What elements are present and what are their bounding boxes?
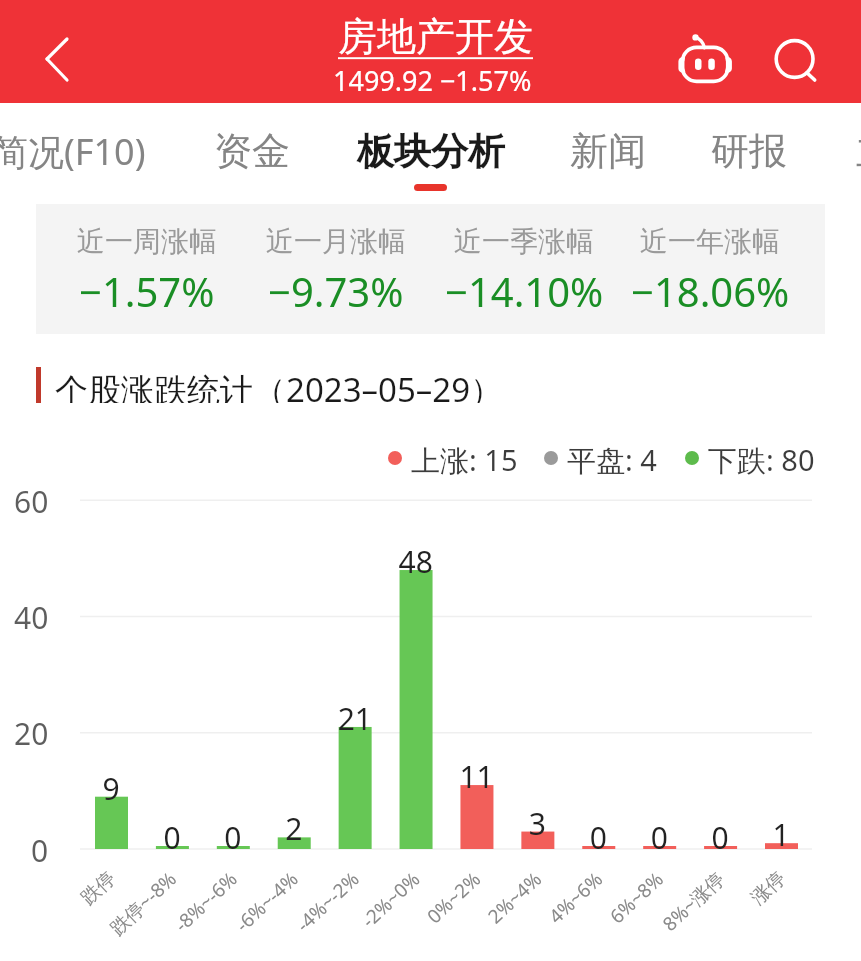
staticText: 个股涨跌统计（2023–05–29） (55, 367, 504, 403)
button[interactable]: 板块分析 (341, 116, 521, 186)
staticText: 研报 (711, 127, 787, 175)
staticText: −1.57% (79, 264, 215, 318)
staticText: 1499.92 −1.57% (333, 62, 532, 99)
staticText: 简况(F10) (0, 127, 146, 176)
button[interactable]: Search (758, 22, 826, 90)
staticText: 下跌: 80 (708, 440, 815, 476)
staticText: 平盘: 4 (567, 440, 657, 476)
staticText: 近一季涨幅 (454, 224, 594, 259)
staticText: −14.10% (445, 264, 604, 318)
staticText: 主 (856, 127, 861, 175)
button[interactable]: 主 (840, 116, 861, 186)
button[interactable]: 资金 (198, 116, 306, 186)
button[interactable]: 简况(F10) (0, 116, 169, 186)
staticText: 上涨: 15 (411, 440, 518, 476)
staticText: 新闻 (570, 127, 646, 175)
button[interactable]: 新闻 (554, 116, 662, 186)
button[interactable]: AI assistant (672, 22, 740, 90)
staticText: 近一周涨幅 (77, 224, 217, 259)
button[interactable]: 上涨: 15 (388, 440, 518, 476)
staticText: 近一年涨幅 (640, 224, 780, 259)
staticText: 房地产开发 (338, 12, 533, 61)
button[interactable]: 研报 (695, 116, 803, 186)
button[interactable]: 平盘: 4 (544, 440, 657, 476)
staticText: 近一月涨幅 (266, 224, 406, 259)
staticText: 板块分析 (357, 128, 505, 175)
staticText: −9.73% (268, 264, 404, 318)
button[interactable]: Back (26, 23, 84, 81)
button[interactable]: 房地产开发 (338, 12, 533, 61)
staticText: 资金 (214, 127, 290, 175)
staticText: −18.06% (631, 264, 790, 318)
button[interactable]: 个股涨跌统计（2023–05–29） (36, 367, 504, 403)
button[interactable]: 下跌: 80 (685, 440, 815, 476)
